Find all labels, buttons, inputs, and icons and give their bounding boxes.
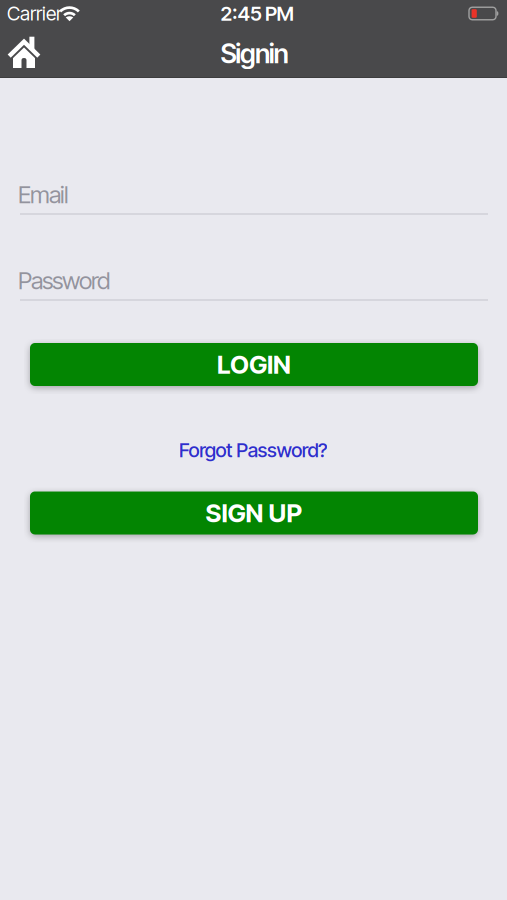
staticText: LOGIN [217, 349, 291, 380]
staticText: Signin [220, 37, 288, 70]
button[interactable]: Email [20, 177, 488, 223]
button[interactable]: Forgot Password? [179, 438, 328, 462]
button[interactable]: SIGN UP [30, 491, 478, 534]
staticText: Email [18, 180, 69, 209]
button[interactable]: Home [8, 35, 40, 68]
staticText: 2:45 PM [220, 1, 293, 26]
staticText: Password [18, 266, 110, 295]
staticText: Forgot Password? [179, 438, 328, 462]
button[interactable]: Password [20, 263, 488, 309]
button[interactable]: LOGIN [30, 343, 478, 386]
staticText: SIGN UP [205, 498, 302, 528]
staticText: Carrier [7, 2, 62, 25]
